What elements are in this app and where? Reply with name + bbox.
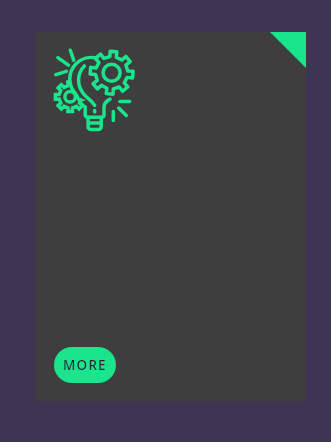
- button[interactable]: MORE: [54, 347, 116, 383]
- other: Featured: [270, 32, 306, 68]
- other: Idea: [54, 48, 138, 134]
- staticText: MORE: [63, 356, 107, 374]
